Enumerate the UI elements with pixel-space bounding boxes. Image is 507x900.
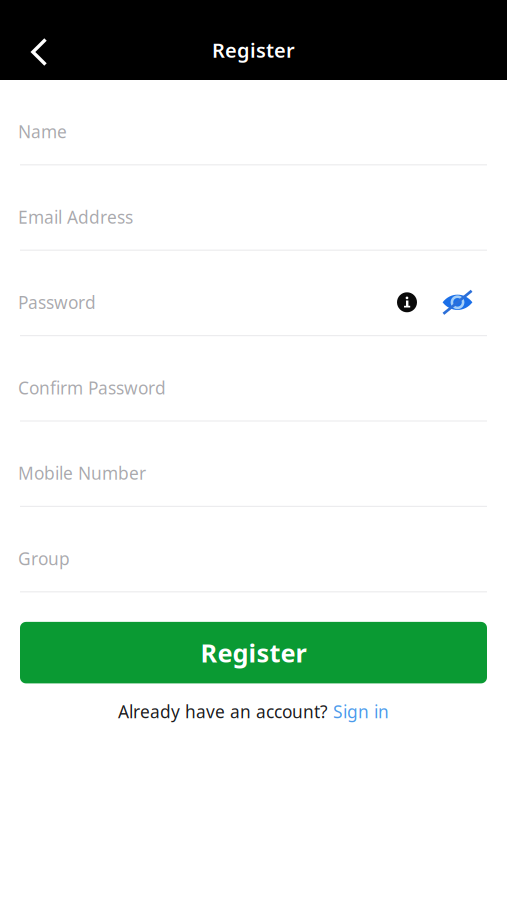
staticText: Group bbox=[18, 547, 70, 570]
button[interactable]: Show password bbox=[442, 290, 473, 315]
button[interactable]: Sign in bbox=[333, 700, 389, 723]
button[interactable]: Password bbox=[20, 275, 397, 330]
button[interactable]: Register bbox=[20, 622, 487, 683]
button[interactable]: Group bbox=[20, 531, 487, 586]
staticText: Name bbox=[18, 120, 67, 143]
staticText: Already have an account? bbox=[118, 700, 328, 723]
button[interactable]: Password information bbox=[397, 292, 417, 312]
staticText: Register bbox=[212, 37, 295, 63]
button[interactable]: Email Address bbox=[20, 189, 487, 244]
staticText: Mobile Number bbox=[18, 462, 146, 485]
button[interactable]: Mobile Number bbox=[20, 446, 487, 501]
staticText: Email Address bbox=[18, 205, 133, 228]
button[interactable]: Back bbox=[14, 26, 64, 78]
staticText: Sign in bbox=[333, 700, 389, 723]
button[interactable]: Name bbox=[20, 104, 487, 159]
staticText: Confirm Password bbox=[18, 376, 166, 399]
button[interactable]: Confirm Password bbox=[20, 360, 487, 415]
staticText: Register bbox=[200, 636, 306, 669]
staticText: Password bbox=[18, 291, 96, 314]
